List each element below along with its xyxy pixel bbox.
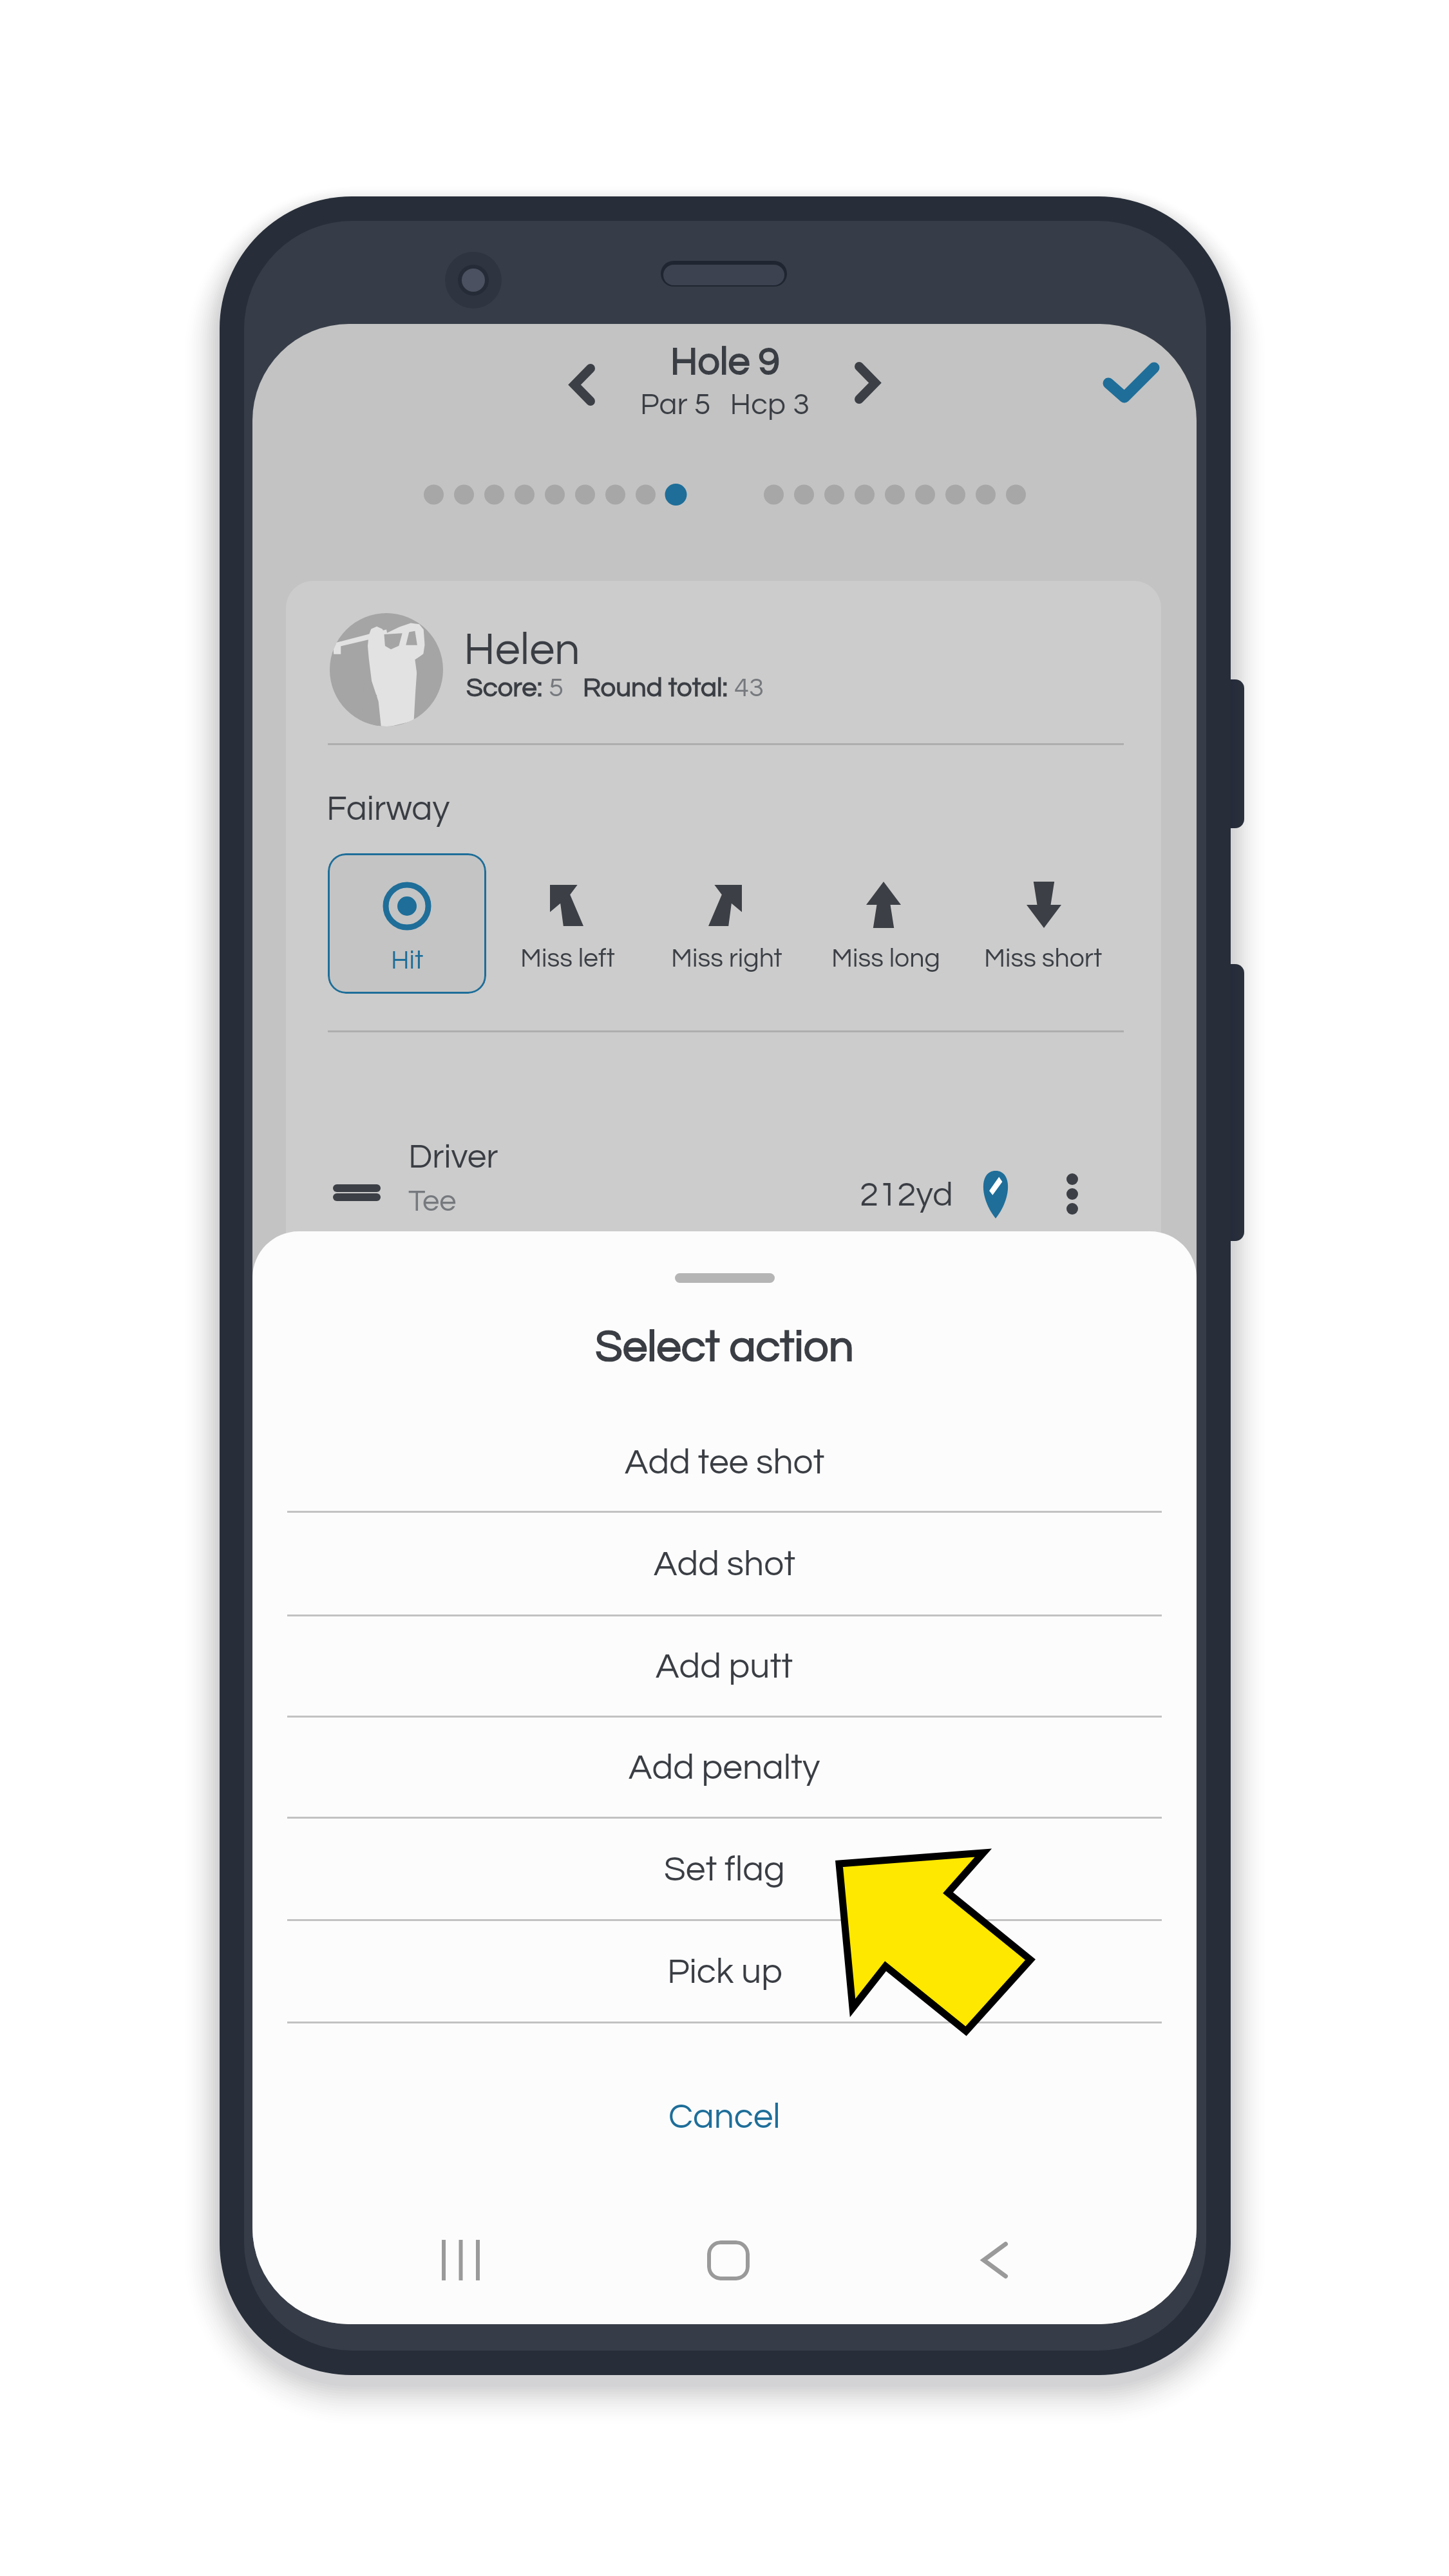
staticText: Hit <box>391 947 424 974</box>
staticText: Add penalty <box>629 1750 820 1786</box>
staticText: Miss long <box>831 945 940 972</box>
staticText: Select action <box>252 1324 1197 1370</box>
button[interactable]: Miss right <box>643 853 810 994</box>
button[interactable]: Home <box>674 2202 783 2318</box>
button[interactable]: Back <box>940 2202 1049 2318</box>
button[interactable]: More options <box>1053 1163 1092 1225</box>
button[interactable]: Cancel <box>252 2069 1197 2165</box>
staticText: Set flag <box>664 1851 785 1888</box>
button[interactable]: Miss short <box>960 853 1127 994</box>
button[interactable]: Miss long <box>802 853 969 994</box>
button[interactable]: Recents <box>406 2202 515 2318</box>
staticText: Driver <box>408 1140 498 1175</box>
button[interactable]: Add putt <box>252 1615 1197 1716</box>
button[interactable]: Hit <box>328 853 486 994</box>
staticText: Miss right <box>671 945 782 972</box>
button[interactable]: Set flag <box>252 1817 1197 1919</box>
staticText: Add shot <box>654 1546 796 1583</box>
staticText: Cancel <box>668 2099 781 2136</box>
button[interactable]: Add shot <box>252 1511 1197 1615</box>
button[interactable]: Next hole <box>835 343 899 423</box>
button[interactable]: Done <box>1067 330 1196 433</box>
staticText: 5 <box>549 674 564 702</box>
staticText: Round total: <box>583 674 734 702</box>
staticText: Add putt <box>656 1649 793 1685</box>
staticText: Helen <box>464 627 580 674</box>
button[interactable]: Pick up <box>252 1919 1197 2022</box>
staticText: Fairway <box>327 791 450 828</box>
staticText: Miss left <box>520 945 615 972</box>
button[interactable]: Previous hole <box>550 345 614 425</box>
button[interactable]: Add penalty <box>252 1716 1197 1817</box>
staticText: Tee <box>408 1186 457 1217</box>
button[interactable]: Miss left <box>484 853 651 994</box>
button[interactable]: Edit location <box>972 1164 1019 1225</box>
staticText: Score: <box>466 674 549 702</box>
button[interactable]: Driver <box>286 1113 1161 1267</box>
staticText: 212yd <box>860 1178 953 1213</box>
staticText: 43 <box>734 674 764 702</box>
staticText: Hole 9 <box>670 342 780 383</box>
button[interactable]: Add tee shot <box>252 1411 1197 1511</box>
staticText: Miss short <box>984 945 1103 972</box>
staticText: Add tee shot <box>625 1444 825 1481</box>
staticText: Par 5 Hcp 3 <box>640 389 810 420</box>
staticText: Pick up <box>667 1954 782 1991</box>
